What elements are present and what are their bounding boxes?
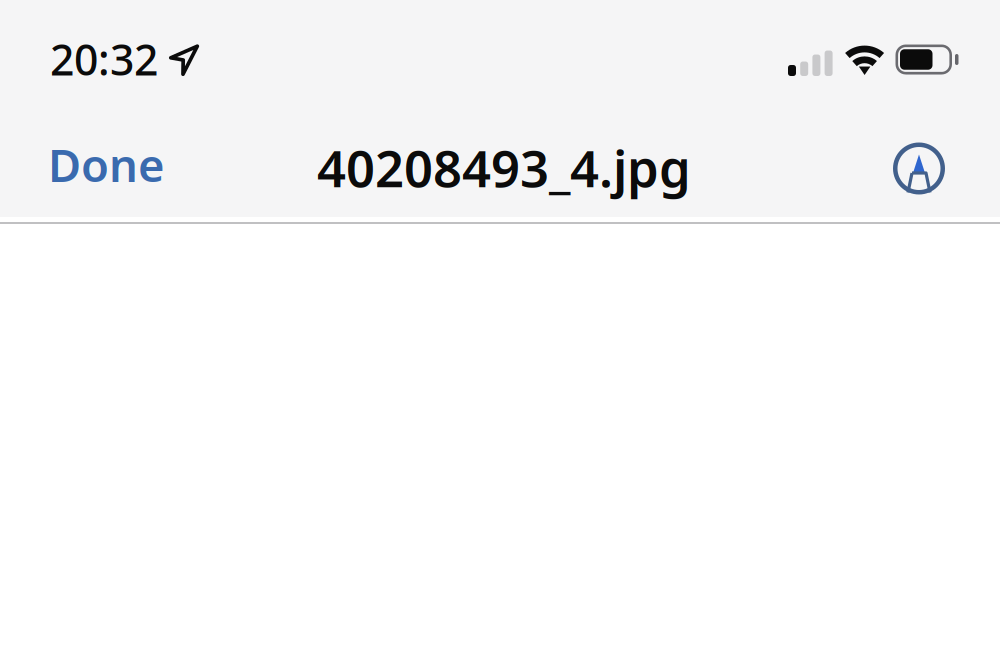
button[interactable]: Done (36, 118, 177, 211)
button[interactable]: Markup (881, 126, 957, 202)
staticText: 40208493_4.jpg (317, 134, 691, 201)
staticText: Done (48, 134, 165, 195)
staticText: 20:32 (50, 31, 158, 87)
